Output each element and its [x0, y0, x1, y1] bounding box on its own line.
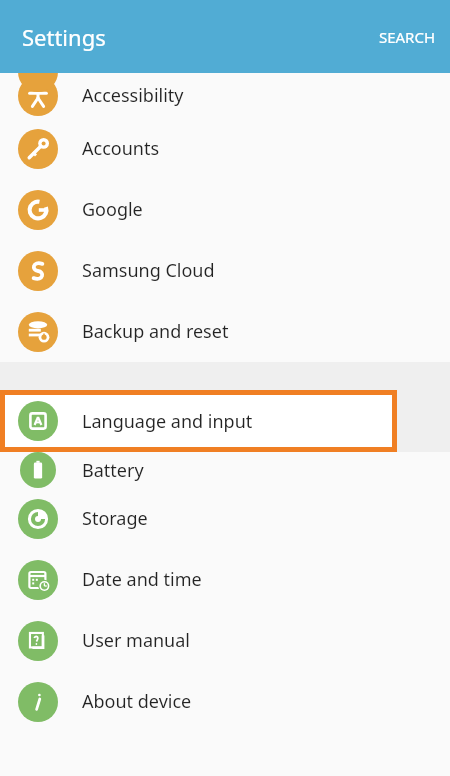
button[interactable]: Battery	[0, 452, 450, 488]
staticText: Settings	[22, 22, 106, 52]
button[interactable]: SEARCH	[363, 15, 450, 59]
staticText: Samsung Cloud	[82, 258, 215, 283]
staticText: Google	[82, 197, 143, 222]
staticText: About device	[82, 689, 192, 714]
staticText: Accessibility	[82, 83, 184, 108]
button[interactable]: Google	[0, 179, 450, 240]
button[interactable]: Accessibility	[0, 73, 450, 118]
staticText: Accounts	[82, 136, 160, 161]
staticText: Language and input	[82, 409, 253, 434]
button[interactable]: User manual	[0, 610, 450, 671]
staticText: Storage	[82, 506, 148, 531]
button[interactable]: Language and input	[5, 395, 392, 447]
staticText: User manual	[82, 628, 190, 653]
staticText: Battery	[82, 458, 144, 483]
staticText: Backup and reset	[82, 319, 229, 344]
button[interactable]: Samsung Cloud	[0, 240, 450, 301]
button[interactable]: Accounts	[0, 118, 450, 179]
staticText: Date and time	[82, 567, 202, 592]
button[interactable]: Date and time	[0, 549, 450, 610]
button[interactable]: Storage	[0, 488, 450, 549]
button[interactable]: Backup and reset	[0, 301, 450, 362]
staticText: SEARCH	[378, 27, 435, 47]
button[interactable]: About device	[0, 671, 450, 732]
